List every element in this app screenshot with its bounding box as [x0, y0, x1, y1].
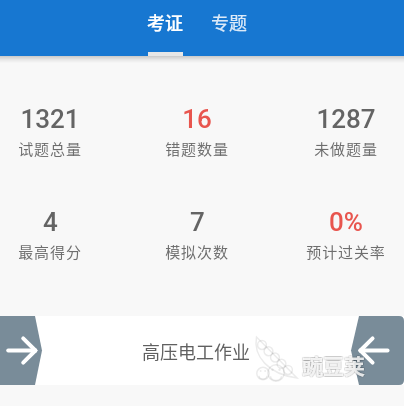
staticText: 豌豆荚	[301, 349, 364, 379]
staticText: 豌豆荚	[302, 350, 365, 380]
staticText: 预计过关率	[306, 241, 386, 263]
button[interactable]: 1287	[271, 104, 404, 160]
staticText: 专题	[211, 9, 247, 35]
button[interactable]: 4	[0, 207, 125, 263]
staticText: 模拟次数	[165, 241, 229, 263]
button[interactable]: 0%	[271, 207, 404, 263]
staticText: 0%	[329, 207, 363, 237]
staticText: 豌豆荚	[301, 350, 364, 380]
staticText: 考证	[147, 9, 183, 35]
staticText: 错题数量	[165, 138, 229, 160]
staticText: 豌豆荚	[302, 351, 365, 381]
staticText: 豌豆荚	[303, 350, 366, 380]
staticText: 未做题量	[314, 138, 378, 160]
staticText: 豌豆荚	[302, 349, 365, 379]
button[interactable]: 1321	[0, 104, 125, 160]
staticText: 豌豆荚	[303, 349, 366, 379]
staticText: 1287	[316, 104, 376, 134]
staticText: 7	[190, 207, 205, 237]
staticText: 高压电工作业	[142, 338, 250, 364]
staticText: 1321	[20, 104, 80, 134]
staticText: 豌豆荚	[301, 351, 364, 381]
staticText: 最高得分	[18, 241, 82, 263]
button[interactable]: 考证	[133, 0, 197, 56]
staticText: 豌豆荚	[303, 351, 366, 381]
button[interactable]: 7	[122, 207, 272, 263]
button[interactable]: 专题	[197, 0, 261, 56]
staticText: 4	[43, 207, 58, 237]
button[interactable]: 高压电工作业	[0, 316, 404, 385]
button[interactable]: 16	[122, 104, 272, 160]
staticText: 试题总量	[18, 138, 82, 160]
staticText: 16	[182, 104, 212, 134]
button[interactable]: Next subject	[0, 316, 42, 385]
button[interactable]: Previous subject	[351, 316, 404, 385]
